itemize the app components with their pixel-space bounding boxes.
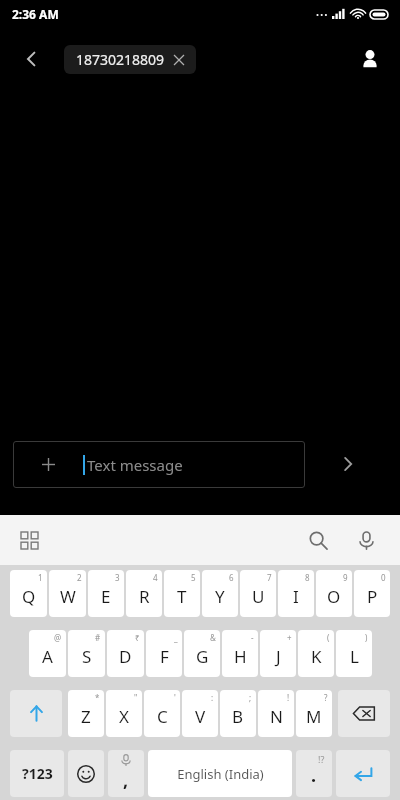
staticText: T [177, 585, 187, 608]
staticText: Text message [87, 455, 183, 475]
staticText: 18730218809 [76, 50, 165, 69]
button[interactable]: * [68, 690, 104, 737]
button[interactable]: & [184, 630, 220, 677]
button[interactable]: ?123 [10, 750, 64, 797]
button[interactable]: 2 [49, 570, 86, 617]
staticText: Z [81, 705, 91, 728]
staticText: Y [215, 585, 225, 608]
button[interactable]: Send [326, 442, 370, 486]
button[interactable]: Comma and voice [108, 750, 144, 797]
button[interactable]: 7 [240, 570, 276, 617]
button[interactable]: + [260, 630, 296, 677]
staticText: . [311, 763, 317, 788]
button[interactable]: Search [300, 522, 336, 558]
button[interactable]: 8 [278, 570, 314, 617]
staticText: @ [54, 632, 62, 643]
button[interactable]: @ [29, 630, 66, 677]
staticText: W [60, 585, 76, 608]
button[interactable]: ; [220, 690, 256, 737]
staticText: , [123, 768, 129, 793]
button[interactable]: Back [10, 37, 54, 81]
button[interactable]: ! [258, 690, 294, 737]
staticText: ' [174, 692, 176, 703]
staticText: R [139, 585, 150, 608]
staticText: C [157, 705, 168, 728]
staticText: K [311, 645, 322, 668]
button[interactable]: 9 [316, 570, 352, 617]
button[interactable]: 18730218809 [64, 45, 196, 74]
button[interactable]: ' [144, 690, 180, 737]
staticText: P [367, 585, 378, 608]
button[interactable]: _ [146, 630, 182, 677]
staticText: 1 [38, 572, 43, 583]
staticText: E [101, 585, 111, 608]
staticText: S [82, 645, 92, 668]
staticText: X [119, 705, 129, 728]
button[interactable]: # [68, 630, 105, 677]
button[interactable]: English (India) [148, 750, 292, 797]
staticText: 2 [77, 572, 82, 583]
staticText: : [211, 692, 214, 703]
button[interactable]: 5 [164, 570, 200, 617]
staticText: ) [365, 632, 368, 643]
button[interactable]: ₹ [107, 630, 144, 677]
staticText: O [327, 585, 341, 608]
staticText: ! [287, 692, 290, 703]
button[interactable]: Enter [336, 750, 390, 797]
staticText: 3 [115, 572, 120, 583]
staticText: Q [22, 585, 36, 608]
staticText: 4 [153, 572, 158, 583]
button[interactable]: 1 [10, 570, 47, 617]
button[interactable]: " [106, 690, 142, 737]
button[interactable]: Keyboard options [12, 523, 46, 557]
button[interactable]: Shift [10, 690, 62, 737]
button[interactable]: Contacts [348, 37, 392, 81]
staticText: ?123 [22, 764, 53, 783]
button[interactable]: - [222, 630, 258, 677]
staticText: 8 [305, 572, 310, 583]
staticText: F [160, 645, 169, 668]
button[interactable]: ? [296, 690, 332, 737]
staticText: B [232, 705, 244, 728]
staticText: ? [324, 692, 328, 703]
staticText: U [252, 585, 265, 608]
staticText: A [42, 645, 53, 668]
button[interactable]: 3 [88, 570, 124, 617]
staticText: - [251, 632, 254, 643]
button[interactable]: ( [298, 630, 334, 677]
staticText: 2:36 AM [12, 6, 59, 22]
staticText: N [270, 705, 283, 728]
staticText: * [95, 692, 100, 703]
button[interactable]: ) [336, 630, 372, 677]
button[interactable]: Text message [13, 441, 305, 488]
button[interactable]: : [182, 690, 218, 737]
button[interactable]: Voice input [348, 522, 384, 558]
staticText: H [234, 645, 247, 668]
staticText: J [276, 645, 281, 668]
button[interactable]: 4 [126, 570, 162, 617]
staticText: D [119, 645, 132, 668]
staticText: & [210, 632, 216, 643]
button[interactable]: 0 [354, 570, 390, 617]
staticText: L [350, 645, 359, 668]
staticText: V [195, 705, 206, 728]
staticText: 6 [229, 572, 234, 583]
staticText: ; [249, 692, 252, 703]
staticText: M [306, 705, 322, 728]
staticText: 0 [381, 572, 386, 583]
staticText: _ [174, 632, 178, 643]
button[interactable]: Emoji [68, 750, 104, 797]
staticText: + [287, 632, 292, 643]
staticText: 7 [267, 572, 272, 583]
button[interactable]: 6 [202, 570, 238, 617]
staticText: English (India) [177, 765, 264, 783]
button[interactable]: Period [296, 750, 332, 797]
staticText: I [293, 585, 299, 608]
staticText: 5 [191, 572, 196, 583]
staticText: G [196, 645, 209, 668]
button[interactable]: Backspace [338, 690, 390, 737]
staticText: # [95, 632, 101, 643]
staticText: ( [327, 632, 330, 643]
staticText: 9 [343, 572, 348, 583]
staticText: " [134, 692, 138, 703]
